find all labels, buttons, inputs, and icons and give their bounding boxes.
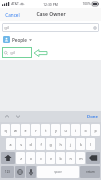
- button[interactable]: h: [56, 138, 65, 150]
- button[interactable]: s: [16, 138, 25, 150]
- staticText: w: [14, 128, 17, 133]
- staticText: l: [90, 142, 91, 147]
- staticText: f: [40, 142, 42, 147]
- staticText: x: [30, 156, 32, 161]
- staticText: s: [20, 142, 22, 147]
- button[interactable]: j: [66, 138, 75, 150]
- button[interactable]: Cancel: [3, 10, 22, 20]
- button[interactable]: Previous field: [3, 113, 10, 120]
- staticText: d: [29, 142, 32, 147]
- staticText: h: [59, 142, 62, 147]
- staticText: r: [35, 128, 37, 133]
- staticText: t: [45, 128, 47, 133]
- staticText: Done: [87, 114, 98, 120]
- staticText: space: [54, 170, 62, 174]
- staticText: c: [40, 156, 42, 161]
- button[interactable]: x: [26, 152, 35, 164]
- button[interactable]: People: [0, 34, 101, 45]
- staticText: i: [75, 128, 76, 133]
- button[interactable]: w: [11, 124, 20, 136]
- staticText: m: [79, 156, 83, 161]
- button[interactable]: k: [76, 138, 85, 150]
- staticText: q: [4, 128, 7, 133]
- staticText: 123: [5, 170, 10, 174]
- button[interactable]: t: [41, 124, 50, 136]
- staticText: People: [12, 37, 27, 43]
- button[interactable]: v: [46, 152, 55, 164]
- button[interactable]: Change keyboard: [15, 166, 25, 178]
- staticText: k: [80, 142, 82, 147]
- button[interactable]: b: [56, 152, 65, 164]
- button[interactable]: f: [36, 138, 45, 150]
- button[interactable]: 123: [1, 166, 14, 178]
- button[interactable]: g: [46, 138, 55, 150]
- button[interactable]: n: [66, 152, 75, 164]
- button[interactable]: Next field: [14, 113, 21, 120]
- staticText: AT&T: [11, 2, 19, 6]
- button[interactable]: z: [16, 152, 25, 164]
- button[interactable]: e: [21, 124, 30, 136]
- staticText: a: [9, 142, 12, 147]
- button[interactable]: u: [61, 124, 70, 136]
- button[interactable]: o: [81, 124, 90, 136]
- button[interactable]: gil: [2, 23, 99, 32]
- staticText: Cancel: [5, 12, 20, 18]
- staticText: gil: [10, 50, 15, 55]
- staticText: v: [50, 156, 52, 161]
- button[interactable]: Delete: [86, 152, 100, 164]
- staticText: z: [20, 156, 22, 161]
- staticText: n: [69, 156, 72, 161]
- staticText: 100%: [82, 2, 91, 6]
- button[interactable]: return: [80, 166, 100, 178]
- button[interactable]: d: [26, 138, 35, 150]
- button[interactable]: q: [1, 124, 10, 136]
- staticText: j: [70, 142, 71, 147]
- button[interactable]: y: [51, 124, 60, 136]
- button[interactable]: c: [36, 152, 45, 164]
- button[interactable]: Dictate: [26, 166, 36, 178]
- staticText: Case Owner: [36, 11, 66, 18]
- staticText: e: [24, 128, 27, 133]
- staticText: p: [94, 128, 97, 133]
- other: Clear text: [93, 26, 97, 30]
- button[interactable]: a: [6, 138, 15, 150]
- button[interactable]: Shift: [1, 152, 15, 164]
- staticText: o: [84, 128, 87, 133]
- button[interactable]: m: [76, 152, 85, 164]
- staticText: return: [86, 170, 95, 174]
- staticText: b: [59, 156, 62, 161]
- staticText: gil: [4, 25, 9, 31]
- staticText: g: [49, 142, 52, 147]
- button[interactable]: l: [86, 138, 95, 150]
- button[interactable]: p: [91, 124, 100, 136]
- staticText: 12:30 PM: [43, 2, 58, 7]
- staticText: u: [64, 128, 67, 133]
- staticText: y: [55, 128, 57, 133]
- button[interactable]: Done: [86, 113, 99, 121]
- button[interactable]: space: [37, 166, 79, 178]
- other: Search: [4, 51, 8, 55]
- button[interactable]: i: [71, 124, 80, 136]
- button[interactable]: r: [31, 124, 40, 136]
- button[interactable]: Search: [2, 47, 32, 58]
